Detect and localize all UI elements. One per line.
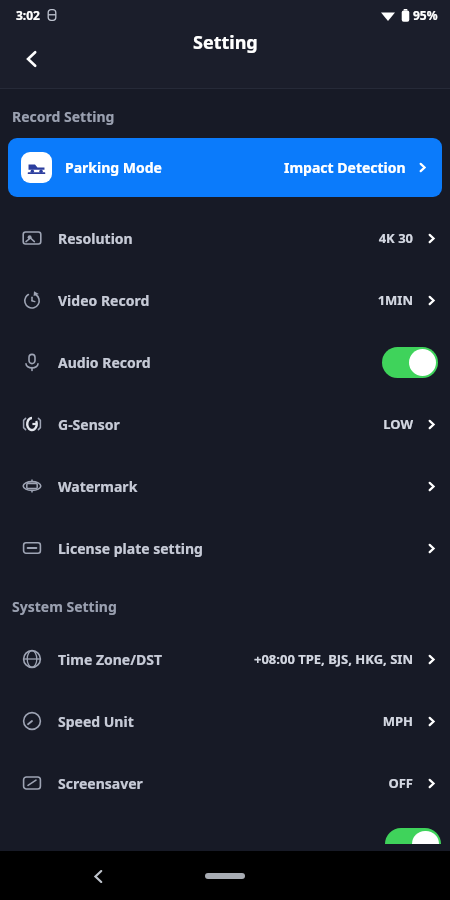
button[interactable]: Time Zone/DST: [0, 628, 450, 690]
button[interactable]: Back: [8, 35, 56, 83]
button[interactable]: License plate setting: [0, 517, 450, 579]
button[interactable]: Screensaver: [0, 752, 450, 814]
staticText: Screensaver: [58, 774, 143, 793]
button[interactable]: Video Record: [0, 269, 450, 331]
staticText: 3:02: [16, 7, 40, 23]
staticText: Parking Mode: [65, 158, 162, 177]
staticText: Audio Record: [58, 353, 151, 372]
button[interactable]: Watermark: [0, 455, 450, 517]
button[interactable]: Audio Record: [0, 331, 450, 393]
button[interactable]: Parking Mode: [8, 138, 442, 197]
staticText: 4K 30: [378, 229, 413, 247]
button[interactable]: Resolution: [0, 207, 450, 269]
staticText: Impact Detection: [284, 158, 406, 177]
staticText: Speed Unit: [58, 712, 134, 731]
staticText: Time Zone/DST: [58, 650, 163, 669]
staticText: MPH: [382, 712, 413, 730]
staticText: License plate setting: [58, 539, 203, 558]
button[interactable]: Home: [195, 861, 255, 891]
staticText: Watermark: [58, 477, 138, 496]
staticText: System Setting: [12, 597, 117, 616]
staticText: Record Setting: [12, 107, 115, 126]
button[interactable]: Speed Unit: [0, 690, 450, 752]
staticText: Setting: [193, 30, 258, 55]
staticText: 95%: [413, 7, 438, 23]
button[interactable]: Audio Record toggle: [382, 347, 438, 378]
button[interactable]: Back: [76, 854, 120, 898]
staticText: Resolution: [58, 229, 133, 248]
button[interactable]: Toggle: [385, 828, 441, 844]
staticText: G-Sensor: [58, 415, 120, 434]
staticText: Video Record: [58, 291, 150, 310]
staticText: OFF: [388, 774, 413, 792]
staticText: +08:00 TPE, BJS, HKG, SIN: [254, 650, 413, 668]
staticText: LOW: [383, 415, 413, 433]
staticText: 1MIN: [377, 291, 413, 309]
button[interactable]: G-Sensor: [0, 393, 450, 455]
